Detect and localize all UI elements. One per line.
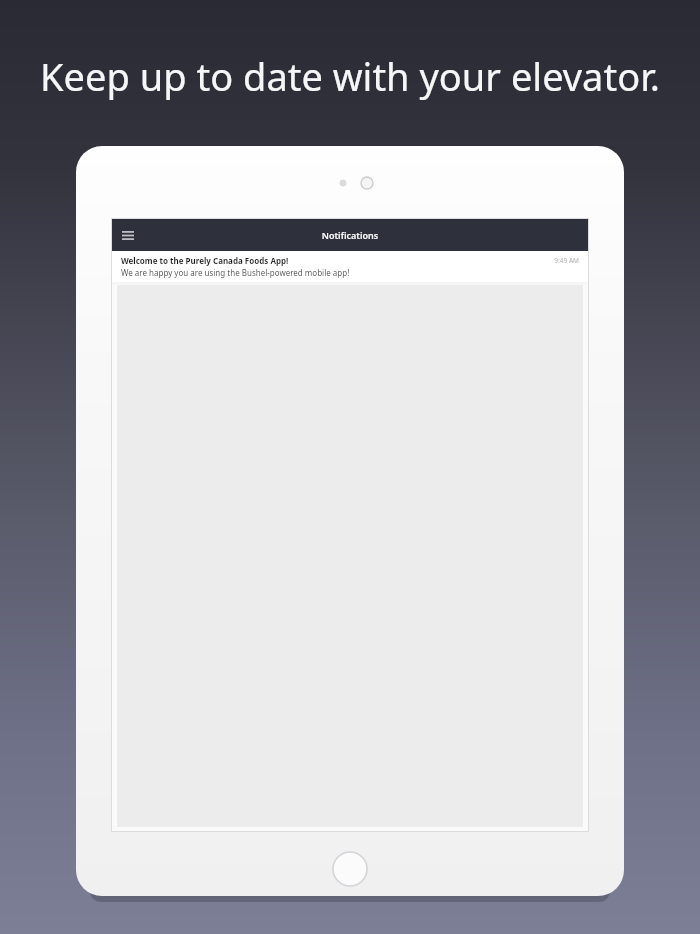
staticText: Welcome to the Purely Canada Foods App! bbox=[121, 255, 289, 266]
staticText: Notifications bbox=[112, 229, 588, 241]
staticText: Keep up to date with your elevator. bbox=[0, 50, 700, 102]
staticText: 9:49 AM bbox=[554, 256, 579, 265]
staticText: We are happy you are using the Bushel-po… bbox=[121, 267, 350, 278]
button[interactable]: Welcome to the Purely Canada Foods App! bbox=[112, 251, 588, 282]
button[interactable]: Open navigation menu bbox=[115, 222, 141, 248]
button[interactable]: Home bbox=[330, 849, 370, 889]
